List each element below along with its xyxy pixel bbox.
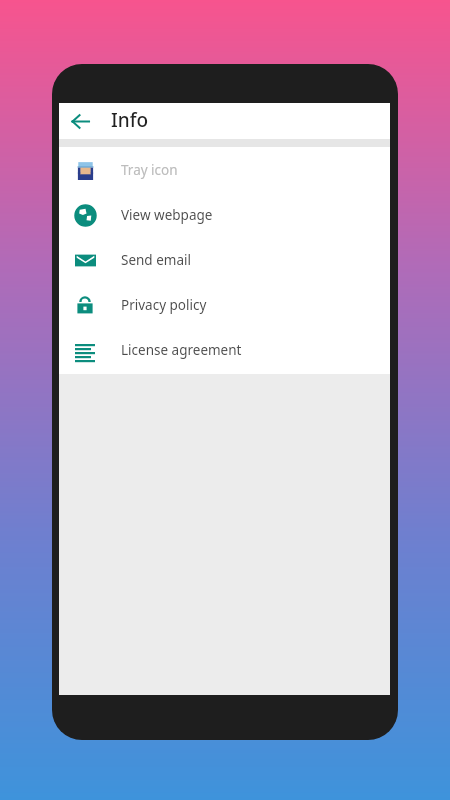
button[interactable]: Privacy policy xyxy=(59,282,390,327)
staticText: Info xyxy=(111,107,149,133)
staticText: View webpage xyxy=(121,206,213,224)
staticText: Privacy policy xyxy=(121,296,207,314)
staticText: Send email xyxy=(121,251,191,269)
button[interactable]: Back xyxy=(64,105,96,137)
staticText: Tray icon xyxy=(121,161,178,179)
button[interactable]: View webpage xyxy=(59,192,390,237)
button[interactable]: Send email xyxy=(59,237,390,282)
staticText: License agreement xyxy=(121,341,242,359)
button[interactable]: License agreement xyxy=(59,327,390,372)
button[interactable]: Tray icon xyxy=(59,147,390,192)
